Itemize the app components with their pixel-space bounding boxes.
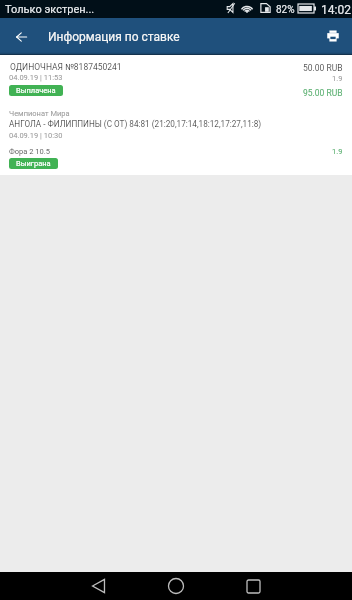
button[interactable]: Back: [0, 18, 37, 55]
staticText: Выиграна: [16, 159, 51, 168]
staticText: 50.00 RUB: [303, 63, 343, 73]
staticText: Чемпионат Мира: [9, 109, 70, 118]
staticText: Выплачена: [16, 86, 56, 95]
button[interactable]: Print: [315, 18, 352, 55]
staticText: Фора 2 10.5: [9, 147, 50, 156]
staticText: 04.09.19 | 11:53: [9, 73, 63, 82]
button[interactable]: Home: [155, 572, 196, 600]
staticText: 1.9: [332, 147, 343, 156]
staticText: 14:02: [321, 3, 351, 17]
button[interactable]: Recent apps: [233, 572, 274, 600]
staticText: Информация по ставке: [48, 30, 180, 44]
staticText: Только экстрен...: [5, 3, 95, 16]
staticText: ОДИНОЧНАЯ №8187450241: [10, 62, 122, 72]
staticText: 1.9: [332, 74, 343, 83]
staticText: 82%: [276, 4, 295, 16]
button[interactable]: Back: [78, 572, 119, 600]
staticText: 04.09.19 | 10:30: [9, 131, 63, 140]
staticText: АНГОЛА - ФИЛИППИНЫ (С ОТ) 84:81 (21:20,1…: [9, 119, 262, 129]
staticText: 95.00 RUB: [303, 88, 343, 98]
